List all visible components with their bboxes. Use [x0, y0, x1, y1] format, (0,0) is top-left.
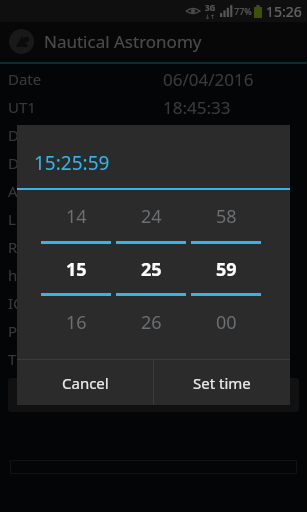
- staticText: ↓↑: [205, 13, 216, 20]
- staticText: 15: [66, 257, 87, 282]
- staticText: Date: [8, 69, 42, 89]
- staticText: L: [8, 209, 16, 229]
- staticText: 18:45:33: [163, 96, 231, 119]
- staticText: 15:26: [266, 2, 302, 21]
- staticText: 00: [216, 310, 237, 335]
- button[interactable]: Cancel: [17, 360, 153, 405]
- staticText: UT1: [8, 97, 36, 117]
- staticText: 14: [66, 204, 87, 229]
- staticText: h: [8, 265, 18, 285]
- staticText: Set time: [193, 373, 251, 393]
- staticText: R: [8, 237, 18, 257]
- staticText: IC: [8, 293, 23, 313]
- staticText: A: [8, 181, 18, 201]
- staticText: Cancel: [62, 373, 109, 393]
- staticText: 16: [66, 310, 87, 335]
- staticText: 26: [141, 310, 162, 335]
- staticText: 58: [216, 204, 237, 229]
- staticText: T: [8, 349, 17, 369]
- staticText: D: [8, 153, 19, 173]
- staticText: Nautical Astronomy: [44, 30, 202, 53]
- staticText: D: [8, 125, 19, 145]
- staticText: 25: [141, 257, 162, 282]
- button[interactable]: Calculate: [8, 378, 299, 412]
- staticText: 59: [216, 257, 237, 282]
- staticText: 24: [141, 204, 162, 229]
- staticText: 06/04/2016: [163, 68, 254, 91]
- staticText: 15:25:59: [34, 150, 110, 176]
- button[interactable]: Set time: [154, 360, 290, 405]
- staticText: 77%: [234, 5, 252, 17]
- staticText: 3G: [205, 2, 216, 13]
- staticText: P: [8, 321, 18, 341]
